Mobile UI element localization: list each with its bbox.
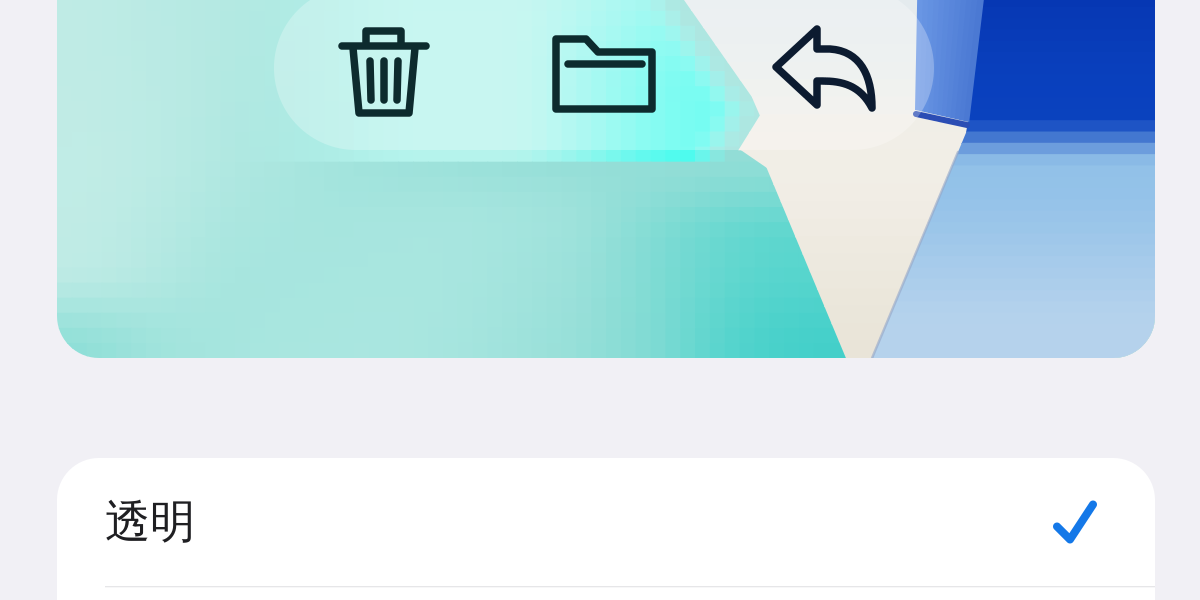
button[interactable]: Move to folder [494,0,714,150]
staticText: 透明 [105,494,195,550]
button[interactable]: Share [714,0,934,150]
button[interactable]: 透明 [57,458,1155,586]
button[interactable]: Delete [274,0,494,150]
